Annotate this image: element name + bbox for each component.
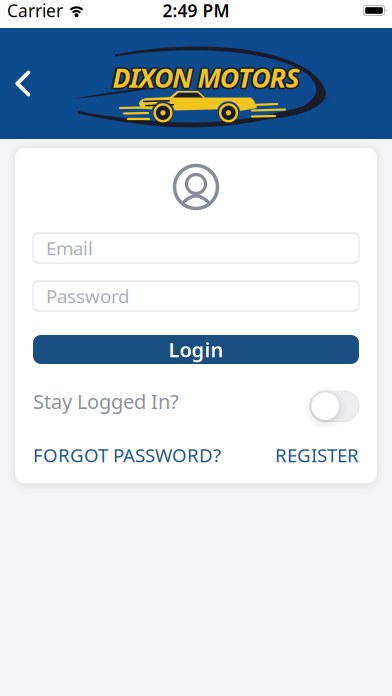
staticText: FORGOT PASSWORD? bbox=[33, 442, 221, 467]
button[interactable]: Back bbox=[0, 56, 43, 110]
staticText: Email bbox=[46, 236, 93, 260]
staticText: DIXON MOTORS bbox=[112, 58, 300, 94]
staticText: Carrier bbox=[7, 0, 63, 22]
staticText: DIXON MOTORS bbox=[111, 60, 298, 95]
button[interactable]: Password bbox=[33, 281, 359, 311]
button[interactable]: Stay Logged In bbox=[310, 391, 359, 421]
staticText: DIXON MOTORS bbox=[111, 59, 298, 94]
staticText: DIXON MOTORS bbox=[111, 61, 298, 96]
staticText: 2:49 PM bbox=[162, 0, 229, 22]
staticText: DIXON MOTORS bbox=[114, 59, 301, 94]
button[interactable]: FORGOT PASSWORD? bbox=[33, 442, 221, 467]
button[interactable]: Login bbox=[33, 335, 359, 364]
staticText: DIXON MOTORS bbox=[112, 61, 300, 97]
staticText: REGISTER bbox=[275, 442, 359, 467]
staticText: DIXON MOTORS bbox=[112, 60, 300, 95]
staticText: Password bbox=[46, 284, 129, 308]
button[interactable]: REGISTER bbox=[275, 442, 359, 467]
staticText: DIXON MOTORS bbox=[114, 60, 301, 95]
button[interactable]: Email bbox=[33, 233, 359, 263]
staticText: DIXON MOTORS bbox=[114, 61, 301, 96]
staticText: Stay Logged In? bbox=[33, 388, 179, 415]
staticText: Login bbox=[168, 336, 223, 363]
